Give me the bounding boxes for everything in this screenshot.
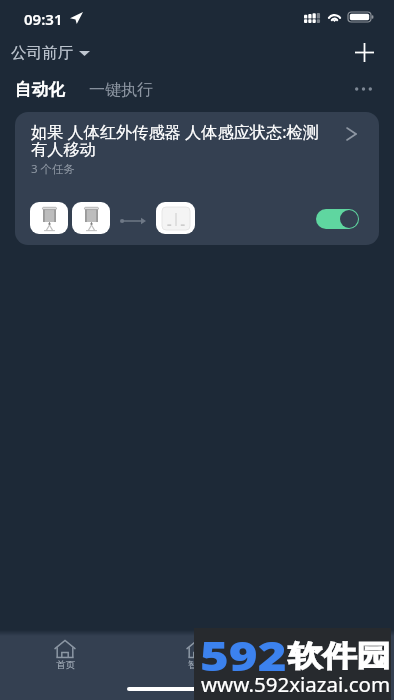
staticText: 我的 — [320, 659, 339, 671]
button[interactable]: 自动化 — [15, 79, 65, 100]
staticText: 公司前厅 — [11, 43, 73, 63]
staticText: 如果 人体红外传感器 人体感应状态:检测 — [31, 121, 319, 143]
staticText: 智能 — [188, 659, 207, 671]
button[interactable]: 一键执行 — [89, 80, 153, 100]
button[interactable]: Toggle automation — [316, 209, 359, 229]
button[interactable]: 如果 人体红外传感器 人体感应状态:检测 — [15, 112, 379, 245]
staticText: 有人移动 — [31, 139, 96, 159]
staticText: 592 — [200, 627, 287, 684]
button[interactable]: 首页 — [40, 638, 90, 678]
button[interactable]: 公司前厅 — [11, 43, 90, 63]
button[interactable]: More options — [350, 75, 377, 102]
staticText: 首页 — [56, 659, 75, 671]
button[interactable]: 我的 — [304, 638, 354, 678]
staticText: 自动化 — [15, 79, 65, 100]
staticText: 软件园 — [288, 638, 391, 674]
staticText: 09:31 — [24, 9, 63, 29]
staticText: www.592xiazai.com — [201, 670, 391, 698]
staticText: 3 个任务 — [31, 161, 76, 177]
staticText: 一键执行 — [89, 80, 153, 100]
button[interactable]: Add — [350, 38, 378, 66]
button[interactable]: 智能 — [172, 638, 222, 678]
